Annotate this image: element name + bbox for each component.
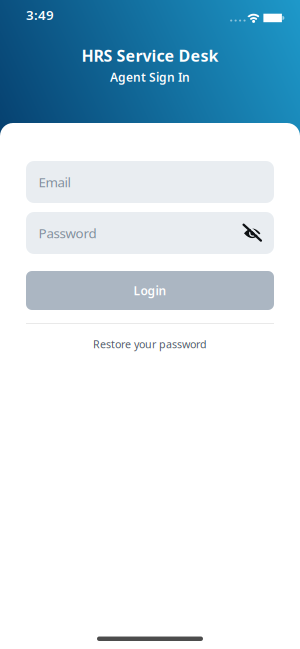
button[interactable]: Login bbox=[26, 271, 274, 310]
staticText: Login bbox=[133, 282, 166, 298]
staticText: Restore your password bbox=[93, 337, 207, 351]
staticText: Email bbox=[38, 173, 70, 191]
staticText: 3:49 bbox=[26, 6, 54, 24]
button[interactable]: Show password bbox=[241, 222, 274, 244]
staticText: Agent Sign In bbox=[110, 69, 190, 85]
button[interactable]: Restore your password bbox=[93, 337, 207, 351]
staticText: Password bbox=[38, 224, 96, 242]
staticText: HRS Service Desk bbox=[81, 45, 218, 66]
